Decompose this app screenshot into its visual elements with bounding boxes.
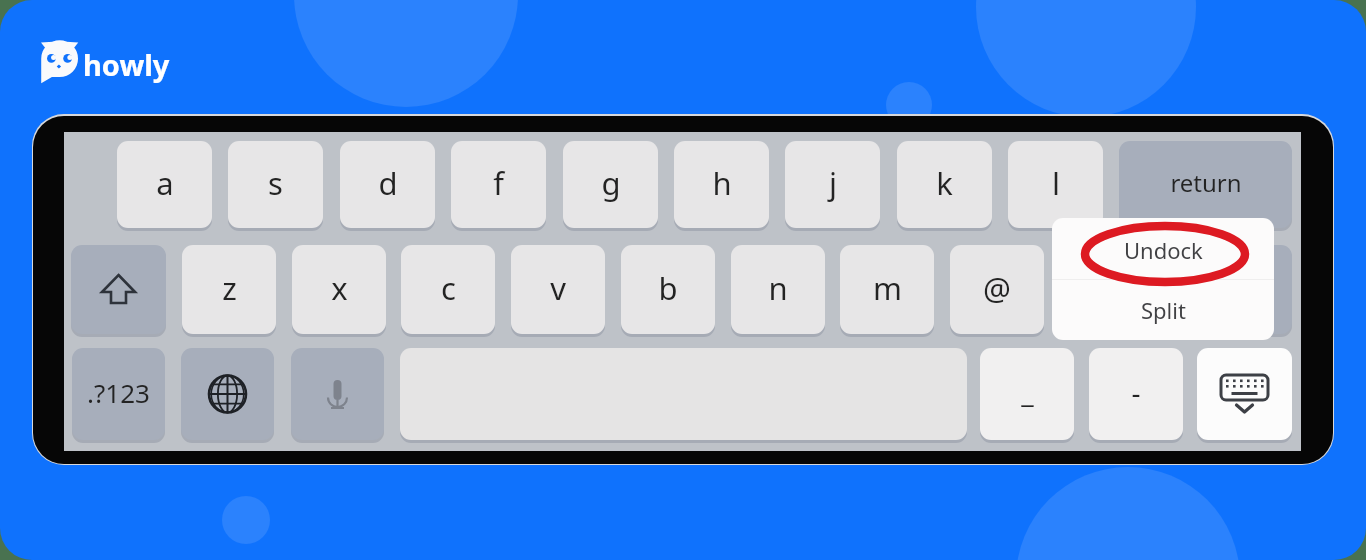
button[interactable]: Shift xyxy=(1119,245,1292,334)
button[interactable]: a xyxy=(117,141,212,228)
staticText: c xyxy=(441,267,456,309)
button[interactable]: @ xyxy=(950,245,1044,334)
button[interactable]: return xyxy=(1119,141,1292,228)
button[interactable]: k xyxy=(897,141,992,228)
button[interactable]: .?123 xyxy=(72,348,165,440)
staticText: Split xyxy=(1141,295,1186,325)
button[interactable]: v xyxy=(511,245,605,334)
button[interactable]: j xyxy=(785,141,880,228)
staticText: f xyxy=(493,162,504,204)
staticText: _ xyxy=(1021,373,1034,411)
staticText: @ xyxy=(983,267,1011,309)
staticText: b xyxy=(658,267,678,309)
button[interactable]: Undock xyxy=(1052,218,1274,340)
button[interactable]: h xyxy=(674,141,769,228)
staticText: - xyxy=(1131,373,1141,411)
staticText: z xyxy=(222,267,237,309)
button[interactable]: z xyxy=(182,245,276,334)
staticText: return xyxy=(1170,166,1242,199)
button[interactable]: Shift xyxy=(71,245,166,334)
button[interactable]: m xyxy=(840,245,934,334)
button[interactable]: Microphone xyxy=(291,348,384,440)
button[interactable]: Hide keyboard xyxy=(1197,348,1292,440)
button[interactable]: n xyxy=(731,245,825,334)
button[interactable]: Globe xyxy=(181,348,274,440)
staticText: h xyxy=(712,162,732,204)
button[interactable]: l xyxy=(1008,141,1103,228)
staticText: .?123 xyxy=(87,375,150,410)
button[interactable]: g xyxy=(563,141,658,228)
staticText: m xyxy=(873,267,902,309)
staticText: g xyxy=(601,162,621,204)
staticText: x xyxy=(331,267,348,309)
button[interactable]: - xyxy=(1089,348,1183,440)
staticText: a xyxy=(156,162,174,204)
staticText: n xyxy=(768,267,788,309)
button[interactable]: f xyxy=(451,141,546,228)
button[interactable]: _ xyxy=(980,348,1074,440)
button[interactable]: b xyxy=(621,245,715,334)
staticText: l xyxy=(1052,162,1060,204)
staticText: d xyxy=(378,162,398,204)
button[interactable]: s xyxy=(228,141,323,228)
staticText: j xyxy=(829,162,837,204)
button[interactable]: x xyxy=(292,245,386,334)
button[interactable]: d xyxy=(340,141,435,228)
button[interactable]: c xyxy=(401,245,495,334)
staticText: k xyxy=(936,162,953,204)
staticText: howly xyxy=(83,45,170,84)
staticText: s xyxy=(268,162,283,204)
staticText: Undock xyxy=(1124,235,1203,265)
staticText: v xyxy=(550,267,566,309)
